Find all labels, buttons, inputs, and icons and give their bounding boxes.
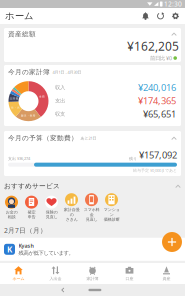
staticText: 収支 xyxy=(55,111,65,117)
staticText: ホーム xyxy=(5,10,34,22)
staticText: 残高が低下しています。 xyxy=(18,250,73,256)
staticText: ¥240,016 xyxy=(138,81,176,94)
button[interactable]: 更新 xyxy=(153,8,168,24)
button[interactable]: 資産 xyxy=(148,263,185,284)
staticText: 支出 ¥36,274 xyxy=(8,156,30,161)
button[interactable]: スマホ料金 見直し xyxy=(83,193,100,222)
button[interactable]: マンション 価格診断 xyxy=(103,193,120,222)
staticText: 資産 xyxy=(162,276,170,281)
staticText: 保険の 見直し xyxy=(45,210,57,219)
staticText: ¥162,205 xyxy=(127,38,179,54)
staticText: 4月1日 - 4月30日 xyxy=(52,69,81,75)
staticText: K xyxy=(7,244,12,255)
staticText: ¥157,092 xyxy=(137,149,177,161)
staticText: 今月の家計簿 xyxy=(8,68,50,76)
button[interactable]: ホーム xyxy=(0,263,37,284)
staticText: ¥174,365 xyxy=(138,94,176,107)
staticText: 入出金 xyxy=(49,276,61,281)
staticText: 残り xyxy=(129,156,137,161)
staticText: 資産総額 xyxy=(8,30,36,38)
button[interactable]: 資産総額 xyxy=(0,28,185,62)
button[interactable]: 入出金 xyxy=(37,263,74,284)
staticText: スマホ料金 見直し xyxy=(83,207,99,222)
staticText: 給与予定 ¥0,000まであと xyxy=(133,168,177,173)
button[interactable]: 今月の家計簿 xyxy=(0,65,185,126)
staticText: 住・光 xyxy=(11,106,20,109)
button[interactable]: 家計簿 xyxy=(74,263,111,284)
staticText: 交際費 xyxy=(10,97,19,100)
button[interactable]: 家計自慢の さきん xyxy=(63,193,80,222)
staticText: 前日比 ¥0 xyxy=(150,54,172,62)
button[interactable]: 口座 xyxy=(111,263,148,284)
staticText: 収入 xyxy=(55,84,65,91)
staticText: ¥65,651 xyxy=(143,108,176,120)
staticText: マンション 価格診断 xyxy=(103,207,119,222)
button[interactable]: 確定 申告 xyxy=(23,196,40,219)
staticText: 2月7日（月） xyxy=(4,226,47,235)
staticText: 12:30 xyxy=(164,0,182,8)
button[interactable]: 設定 xyxy=(168,8,183,24)
staticText: 家計自慢の さきん xyxy=(63,207,79,222)
staticText: お金の 相談 xyxy=(5,210,17,219)
button[interactable]: 追加 xyxy=(162,232,182,252)
button[interactable]: K xyxy=(0,238,185,261)
staticText: おすすめサービス xyxy=(4,182,60,190)
staticText: ホーム xyxy=(12,276,24,281)
staticText: 家計簿 xyxy=(86,276,98,281)
staticText: 今月の予算（変動費） xyxy=(8,134,78,142)
staticText: 支出 xyxy=(55,97,65,104)
button[interactable]: 保険の 見直し xyxy=(43,196,60,219)
button[interactable]: お金の 相談 xyxy=(3,196,20,219)
staticText: 趣味・教養 xyxy=(21,114,36,117)
staticText: Kyash xyxy=(18,242,33,249)
button[interactable]: 今月の予算（変動費） xyxy=(0,131,185,176)
staticText: 確定 申告 xyxy=(27,210,35,219)
staticText: 食費 xyxy=(39,95,45,98)
button[interactable]: 通知 xyxy=(138,8,153,24)
staticText: あと21日 xyxy=(80,135,96,141)
staticText: 口座 xyxy=(125,276,133,281)
